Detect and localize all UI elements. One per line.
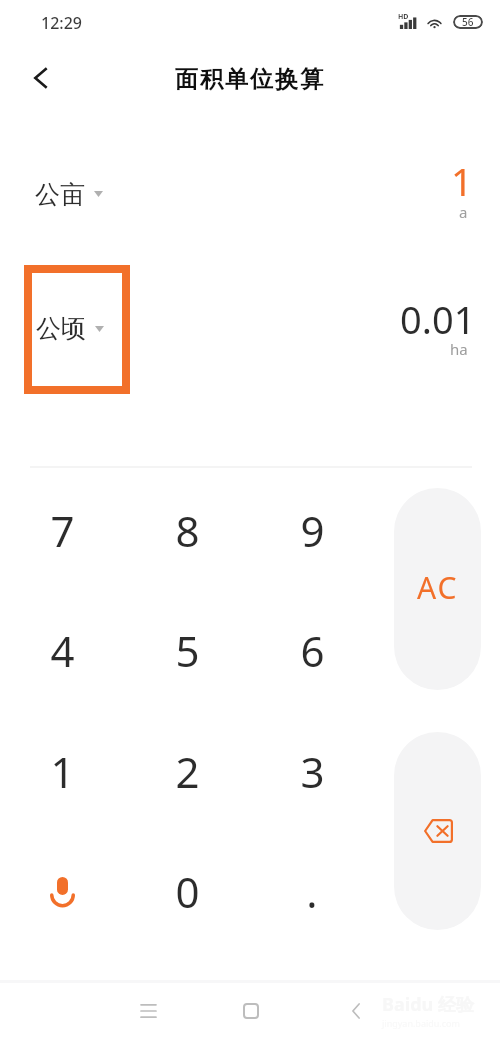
staticText: 12:29 <box>41 12 82 34</box>
button[interactable]: 2 <box>127 713 247 829</box>
staticText: 8 <box>175 502 200 559</box>
staticText: ha <box>450 339 468 359</box>
staticText: 56 <box>462 15 474 29</box>
staticText: 2 <box>175 743 200 800</box>
staticText: . <box>306 863 318 920</box>
button[interactable]: Recents <box>120 983 176 1039</box>
button[interactable]: 6 <box>252 592 372 708</box>
staticText: 1 <box>451 155 473 207</box>
button[interactable]: Back <box>328 983 384 1039</box>
staticText: 0 <box>175 863 200 920</box>
staticText: 公顷 <box>36 313 86 344</box>
staticText: 1 <box>50 743 75 800</box>
button[interactable]: Voice input <box>2 833 122 949</box>
staticText: 6 <box>300 622 325 679</box>
button[interactable]: Backspace <box>394 732 481 930</box>
button[interactable]: 8 <box>127 472 247 588</box>
staticText: HD <box>398 12 409 22</box>
button[interactable]: 7 <box>2 472 122 588</box>
staticText: a <box>459 202 468 222</box>
staticText: AC <box>417 567 459 608</box>
button[interactable]: 0 <box>127 833 247 949</box>
staticText: Baidu 经验 <box>382 992 474 1017</box>
button[interactable]: AC <box>394 488 481 690</box>
staticText: 4 <box>50 622 75 679</box>
button[interactable]: Home <box>223 983 279 1039</box>
staticText: 5 <box>175 622 200 679</box>
button[interactable]: 公亩 <box>24 168 130 220</box>
button[interactable]: 公顷 <box>24 265 130 394</box>
staticText: 公亩 <box>35 179 85 210</box>
button[interactable]: . <box>252 833 372 949</box>
staticText: 9 <box>300 502 325 559</box>
button[interactable]: 4 <box>2 592 122 708</box>
staticText: 0.01 <box>400 293 476 345</box>
staticText: 3 <box>300 743 325 800</box>
button[interactable]: 5 <box>127 592 247 708</box>
button[interactable]: Back <box>19 56 63 100</box>
button[interactable]: 1 <box>2 713 122 829</box>
button[interactable]: 3 <box>252 713 372 829</box>
staticText: 7 <box>50 502 75 559</box>
button[interactable]: 9 <box>252 472 372 588</box>
staticText: 面积单位换算 <box>0 65 500 94</box>
